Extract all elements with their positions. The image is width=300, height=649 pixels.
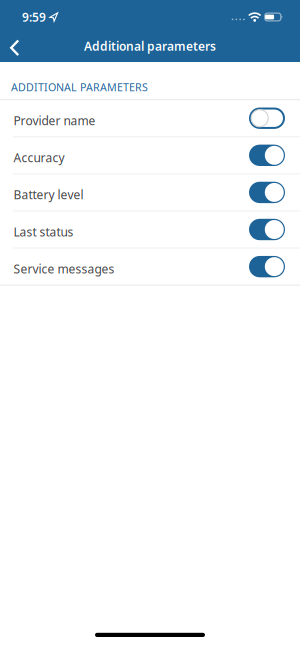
button[interactable]: Provider name — [0, 100, 300, 136]
staticText: Provider name — [13, 112, 95, 128]
staticText: Accuracy — [13, 150, 64, 165]
staticText: 9:59 — [22, 9, 46, 25]
staticText: Additional parameters — [84, 38, 216, 54]
staticText: ADDITIONAL PARAMETERS — [11, 80, 148, 94]
staticText: Battery level — [13, 187, 83, 203]
button[interactable]: Back — [0, 30, 32, 62]
button[interactable]: Service messages — [0, 249, 300, 285]
button[interactable]: Last status — [0, 211, 300, 248]
staticText: Last status — [13, 224, 73, 240]
staticText: Service messages — [13, 261, 114, 277]
button[interactable]: Accuracy — [0, 137, 300, 173]
button[interactable]: Battery level — [0, 174, 300, 210]
